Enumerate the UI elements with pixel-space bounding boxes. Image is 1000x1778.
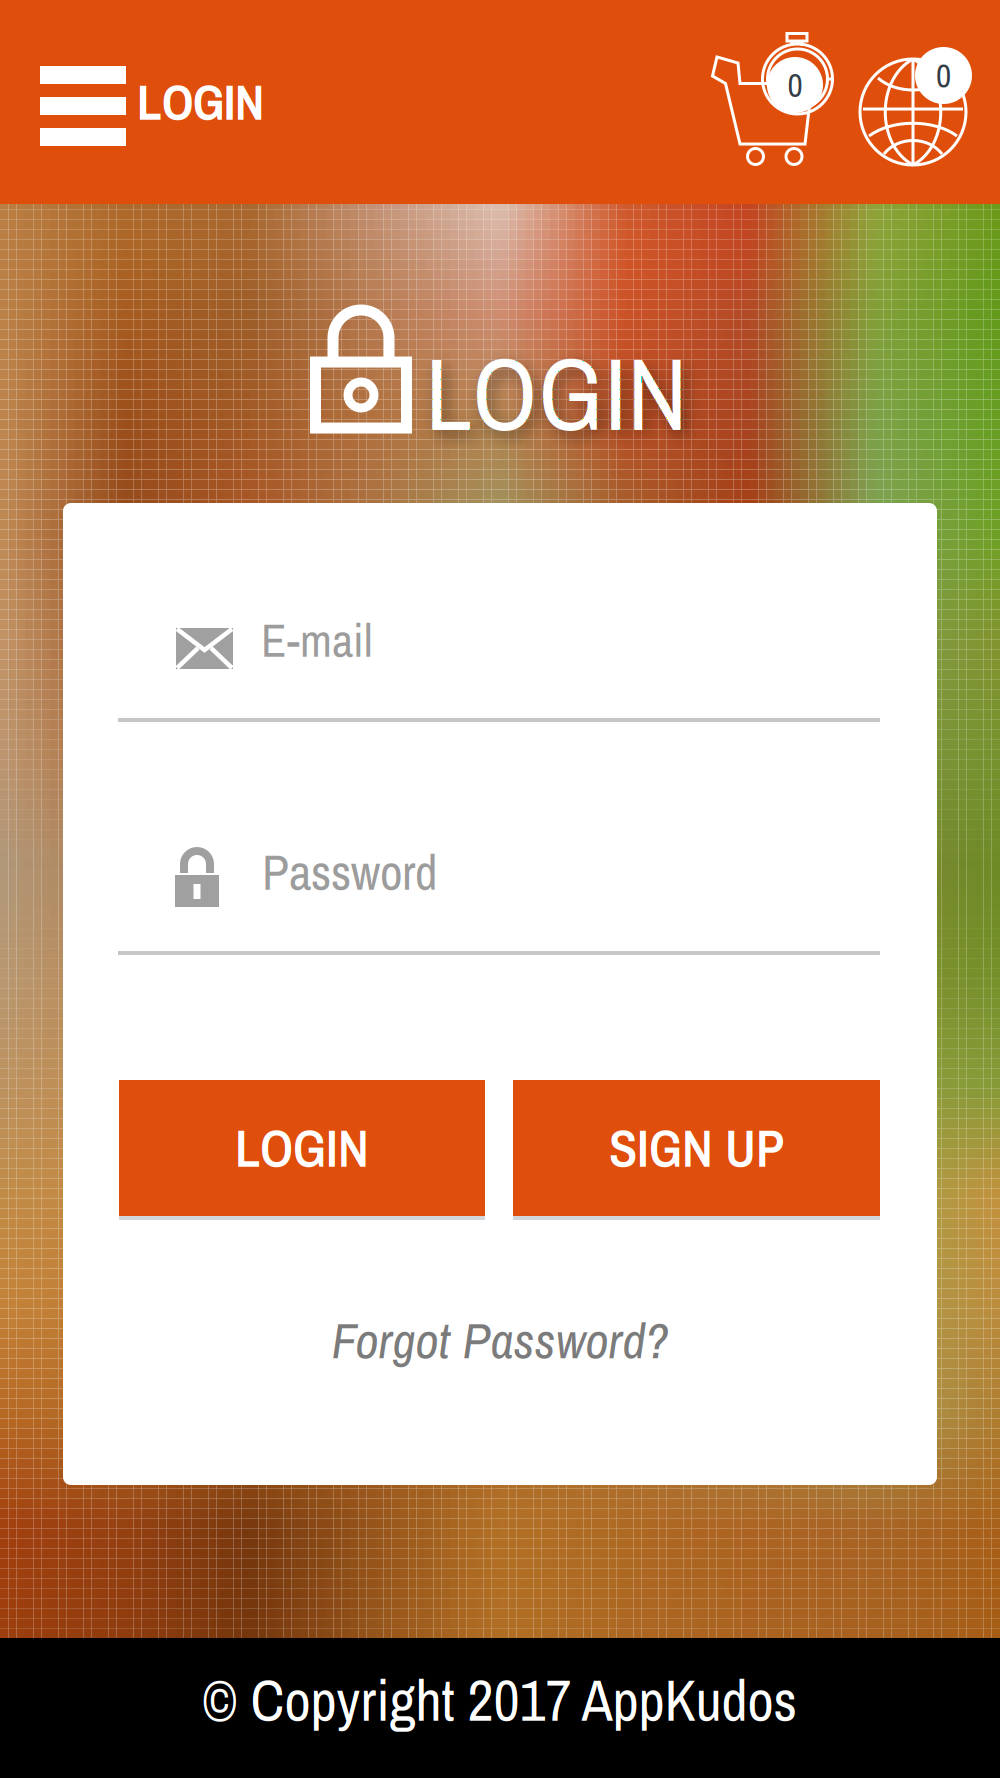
staticText: © Copyright 2017 AppKudos [202, 1661, 797, 1739]
staticText: 0 [936, 53, 951, 98]
staticText: Password [262, 839, 437, 905]
staticText: Forgot Password? [331, 1306, 668, 1374]
staticText: LOGIN [137, 69, 264, 135]
button[interactable]: LOGIN [119, 1080, 485, 1216]
staticText: LOGIN [425, 324, 688, 462]
staticText: 0 [787, 63, 802, 107]
button[interactable]: Cart [711, 32, 833, 165]
button[interactable]: Forgot Password? [63, 1310, 937, 1370]
button[interactable]: Language [862, 56, 972, 171]
staticText: SIGN UP [609, 1113, 784, 1183]
button[interactable]: Menu [18, 36, 148, 176]
staticText: LOGIN [235, 1113, 369, 1183]
button[interactable]: SIGN UP [513, 1080, 880, 1216]
staticText: E-mail [261, 609, 372, 671]
